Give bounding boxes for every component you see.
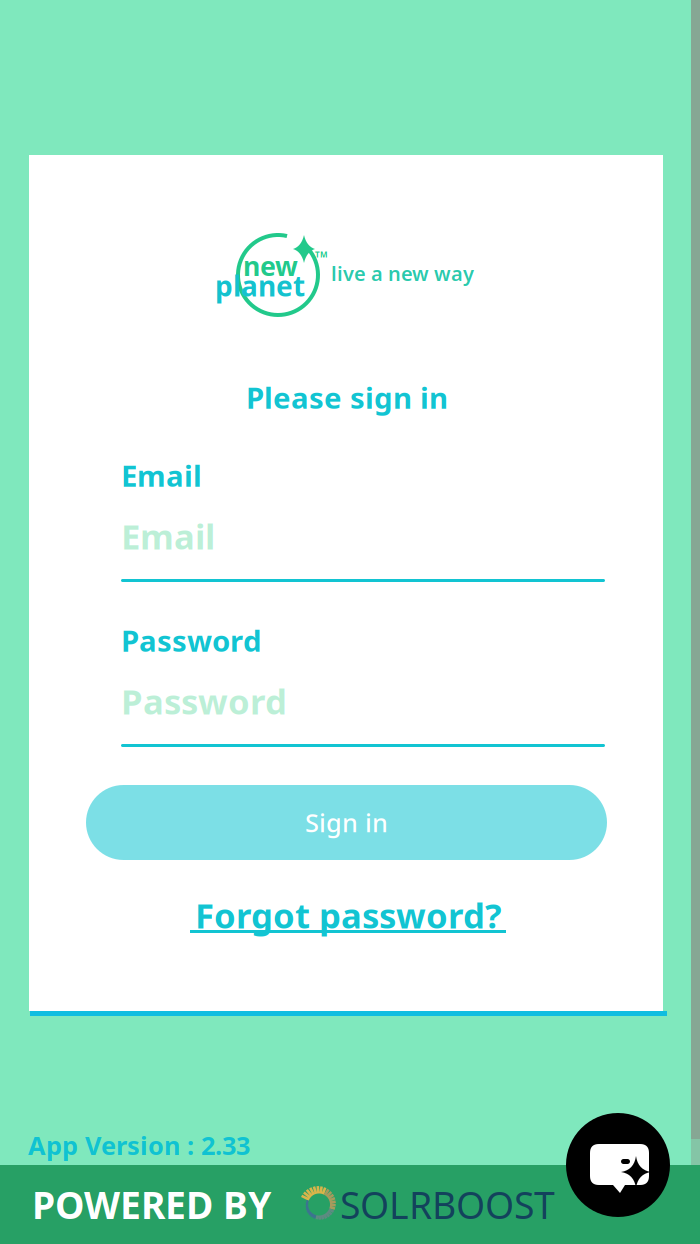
staticText: Password (121, 621, 262, 660)
button[interactable]: Sign in (86, 785, 607, 860)
staticText: live a new way (331, 260, 474, 287)
staticText: App Version : 2.33 (28, 1128, 250, 1162)
staticText: TM (315, 249, 328, 260)
staticText: POWERED BY (32, 1180, 271, 1229)
staticText: Please sign in (246, 378, 448, 417)
staticText: Email (121, 513, 215, 559)
staticText: Forgot password? (195, 892, 502, 938)
staticText: planet (215, 267, 305, 304)
staticText: Sign in (305, 806, 388, 839)
button[interactable]: Forgot password? (190, 892, 510, 940)
staticText: new (243, 248, 298, 283)
staticText: Password (121, 678, 287, 724)
staticText: SOLRBOOST (340, 1180, 555, 1229)
button[interactable]: Chat support (566, 1113, 670, 1217)
staticText: Email (121, 456, 202, 495)
